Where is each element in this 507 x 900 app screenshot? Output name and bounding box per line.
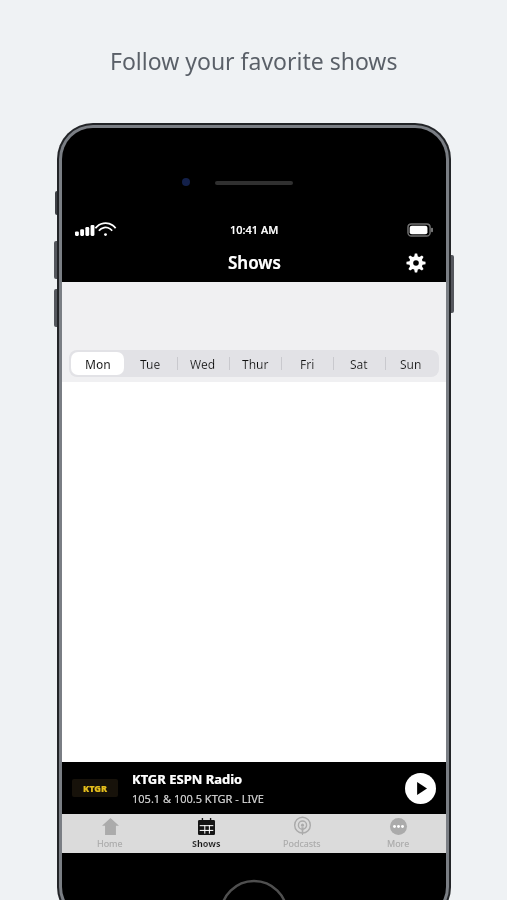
staticText: KTGR	[83, 782, 108, 794]
staticText: Mon	[85, 356, 111, 372]
button[interactable]: More	[350, 814, 446, 853]
staticText: 105.1 & 100.5 KTGR - LIVE	[132, 791, 264, 806]
button[interactable]: Mon	[71, 352, 124, 375]
button[interactable]: Thur	[229, 352, 281, 375]
button[interactable]: Tue	[124, 352, 177, 375]
button[interactable]: Sat	[333, 352, 385, 375]
button[interactable]: Wed	[177, 352, 229, 375]
staticText: Home	[97, 837, 123, 849]
staticText: Wed	[190, 356, 216, 372]
staticText: Tue	[140, 356, 161, 372]
button[interactable]: Settings	[400, 247, 432, 279]
staticText: KTGR ESPN Radio	[132, 770, 243, 788]
button[interactable]: Podcasts	[254, 814, 350, 853]
staticText: Shows	[192, 837, 221, 849]
button[interactable]: Home	[62, 814, 158, 853]
button[interactable]: Sun	[385, 352, 437, 375]
staticText: Follow your favorite shows	[110, 45, 398, 76]
staticText: Shows	[228, 251, 281, 274]
staticText: Sun	[400, 356, 422, 372]
staticText: Thur	[242, 356, 269, 372]
staticText: More	[387, 837, 410, 849]
button[interactable]: Shows	[158, 814, 254, 853]
button[interactable]: KTGR	[62, 762, 446, 814]
staticText: 10:41 AM	[230, 222, 279, 237]
staticText: Sat	[350, 356, 368, 372]
staticText: Podcasts	[283, 837, 321, 849]
staticText: Fri	[300, 356, 315, 372]
button[interactable]: Play	[405, 773, 436, 804]
button[interactable]: Fri	[281, 352, 333, 375]
